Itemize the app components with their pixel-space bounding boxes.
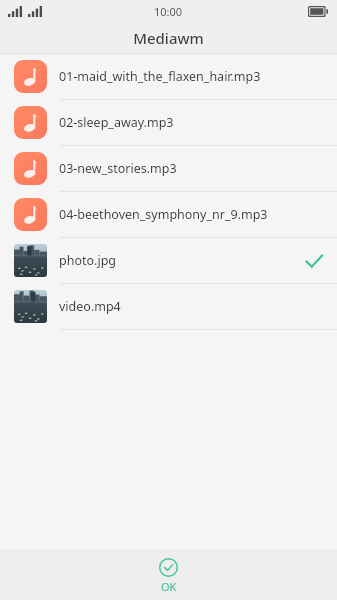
other: Selected bbox=[303, 250, 325, 272]
button[interactable]: 03-new_stories.mp3 bbox=[0, 146, 337, 191]
button[interactable]: photo.jpg bbox=[0, 238, 337, 283]
staticText: Mediawm bbox=[133, 28, 204, 48]
button[interactable]: OK bbox=[137, 554, 200, 598]
staticText: 01-maid_with_the_flaxen_hair.mp3 bbox=[59, 68, 303, 85]
button[interactable]: 04-beethoven_symphony_nr_9.mp3 bbox=[0, 192, 337, 237]
staticText: 10:00 bbox=[154, 4, 183, 19]
staticText: 04-beethoven_symphony_nr_9.mp3 bbox=[59, 206, 303, 223]
staticText: 02-sleep_away.mp3 bbox=[59, 114, 303, 131]
staticText: video.mp4 bbox=[59, 298, 303, 315]
staticText: OK bbox=[161, 579, 177, 594]
button[interactable]: 02-sleep_away.mp3 bbox=[0, 100, 337, 145]
staticText: 03-new_stories.mp3 bbox=[59, 160, 303, 177]
staticText: photo.jpg bbox=[59, 252, 303, 269]
button[interactable]: 01-maid_with_the_flaxen_hair.mp3 bbox=[0, 54, 337, 99]
button[interactable]: video.mp4 bbox=[0, 284, 337, 329]
